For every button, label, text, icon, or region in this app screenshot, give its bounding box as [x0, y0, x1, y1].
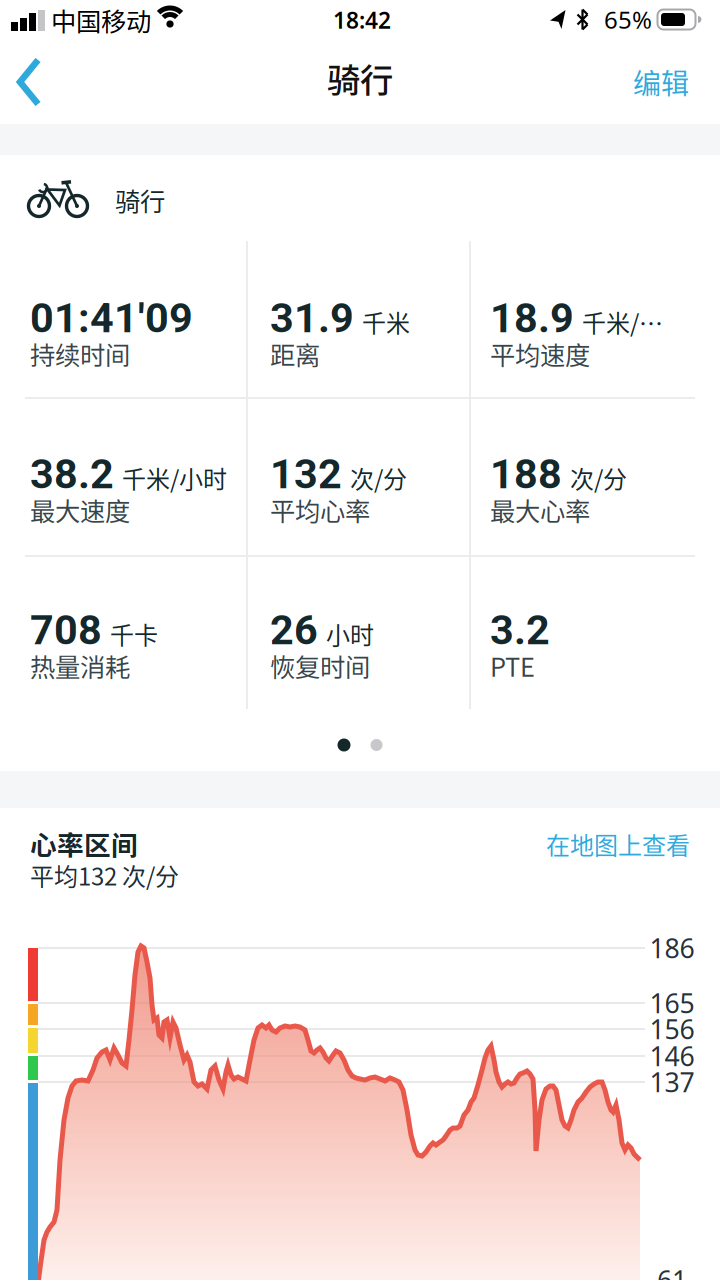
- button[interactable]: 在地图上查看: [546, 827, 690, 861]
- staticText: 次/分: [350, 460, 407, 495]
- staticText: 千卡: [110, 616, 158, 651]
- staticText: 最大心率: [490, 491, 590, 528]
- staticText: 146: [649, 1038, 694, 1074]
- staticText: 平均心率: [270, 491, 370, 528]
- staticText: 186: [649, 930, 694, 966]
- staticText: 小时: [326, 616, 374, 651]
- staticText: 平均速度: [490, 335, 590, 372]
- staticText: 千米: [362, 304, 410, 339]
- staticText: 156: [649, 1011, 694, 1047]
- staticText: 01:41'09: [30, 294, 193, 342]
- staticText: 61: [657, 1262, 687, 1280]
- staticText: 骑行: [327, 54, 393, 102]
- staticText: 132: [270, 450, 342, 498]
- button[interactable]: 编辑: [633, 62, 689, 102]
- button[interactable]: Back: [0, 44, 60, 124]
- staticText: 千米/小时: [122, 460, 227, 495]
- staticText: 平均132 次/分: [30, 858, 179, 892]
- staticText: 18.9: [490, 294, 574, 342]
- staticText: 中国移动: [51, 2, 151, 38]
- staticText: 708: [30, 606, 102, 654]
- staticText: 心率区间: [30, 824, 138, 863]
- staticText: 188: [490, 450, 562, 498]
- staticText: PTE: [490, 647, 535, 684]
- staticText: 3.2: [490, 606, 550, 654]
- staticText: 18:42: [333, 5, 391, 35]
- staticText: 在地图上查看: [546, 827, 690, 861]
- staticText: 持续时间: [30, 335, 130, 372]
- staticText: 最大速度: [30, 491, 130, 528]
- staticText: 编辑: [633, 62, 689, 102]
- staticText: 38.2: [30, 450, 114, 498]
- staticText: 31.9: [270, 294, 354, 342]
- staticText: 骑行: [115, 182, 165, 218]
- staticText: 恢复时间: [270, 647, 370, 684]
- staticText: 热量消耗: [30, 647, 130, 684]
- staticText: 次/分: [570, 460, 627, 495]
- staticText: 距离: [270, 335, 320, 372]
- staticText: 65%: [604, 4, 652, 35]
- staticText: 165: [649, 985, 694, 1021]
- staticText: 26: [270, 606, 318, 654]
- staticText: 137: [649, 1064, 694, 1100]
- staticText: 千米/…: [582, 304, 663, 339]
